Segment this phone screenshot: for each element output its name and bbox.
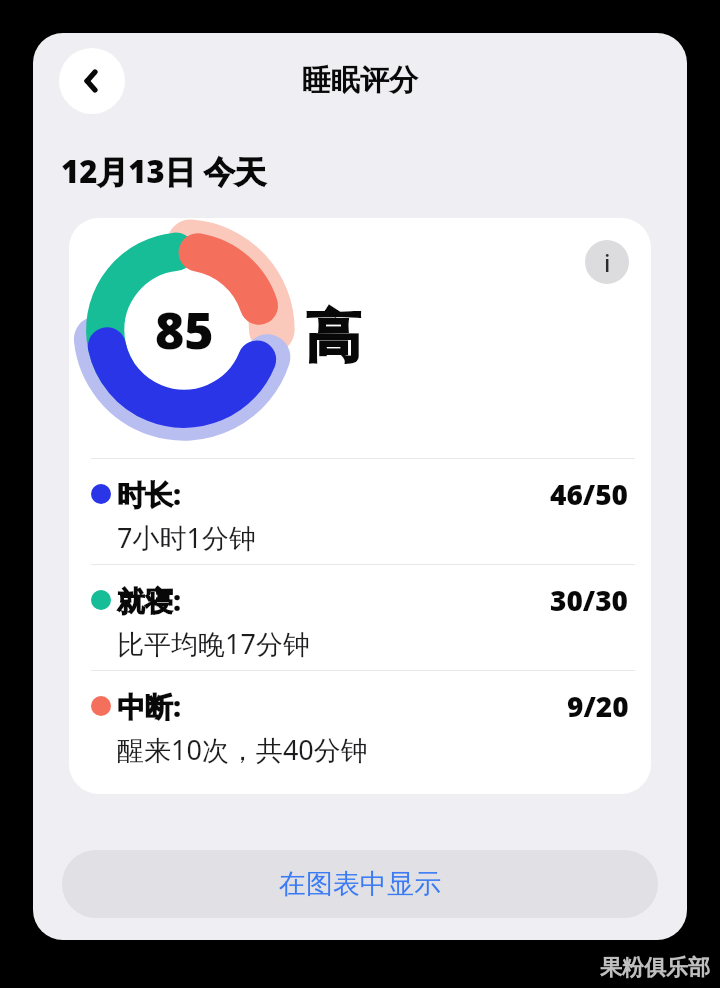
staticText: 果粉俱乐部 xyxy=(600,954,710,982)
staticText: 时长: xyxy=(117,475,182,513)
button[interactable]: 时长: xyxy=(69,459,651,564)
staticText: 85 xyxy=(155,296,214,364)
button[interactable]: 在图表中显示 xyxy=(62,850,658,918)
staticText: 9/20 xyxy=(567,687,629,725)
staticText: 7小时1分钟 xyxy=(117,519,256,556)
staticText: i xyxy=(604,246,611,279)
button[interactable]: Back xyxy=(59,48,125,114)
staticText: 就寝: xyxy=(117,581,182,619)
staticText: 中断: xyxy=(117,687,182,725)
staticText: 醒来10次，共40分钟 xyxy=(117,731,368,768)
staticText: 46/50 xyxy=(550,475,629,513)
staticText: 30/30 xyxy=(550,581,629,619)
staticText: 在图表中显示 xyxy=(279,867,441,901)
staticText: 12月13日 今天 xyxy=(61,150,266,192)
staticText: 比平均晚17分钟 xyxy=(117,625,310,662)
staticText: 睡眠评分 xyxy=(302,62,418,99)
button[interactable]: Info xyxy=(585,240,629,284)
staticText: 高 xyxy=(305,302,361,373)
button[interactable]: 中断: xyxy=(69,671,651,776)
button[interactable]: 就寝: xyxy=(69,565,651,670)
